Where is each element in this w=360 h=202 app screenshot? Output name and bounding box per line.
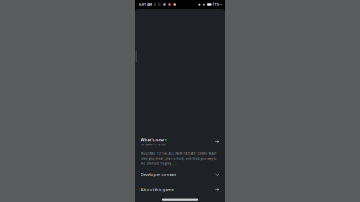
staticText: 6:01 AM (139, 2, 152, 7)
staticText: What's new (140, 137, 163, 142)
button[interactable]: What's new (135, 137, 225, 147)
staticText: 71% (213, 2, 220, 6)
staticText: G (154, 2, 157, 7)
staticText: WELCOME TO THE ALL-NEW PAYDAY: CRIME WAR… (140, 152, 216, 165)
staticText: Developer contact (140, 172, 175, 177)
button[interactable]: Developer contact (135, 167, 225, 182)
staticText: Last updated 13 Apr 2024 (140, 143, 165, 146)
staticText: About this game (140, 187, 173, 192)
staticText: G (158, 2, 161, 7)
button[interactable]: About this game (135, 182, 225, 197)
